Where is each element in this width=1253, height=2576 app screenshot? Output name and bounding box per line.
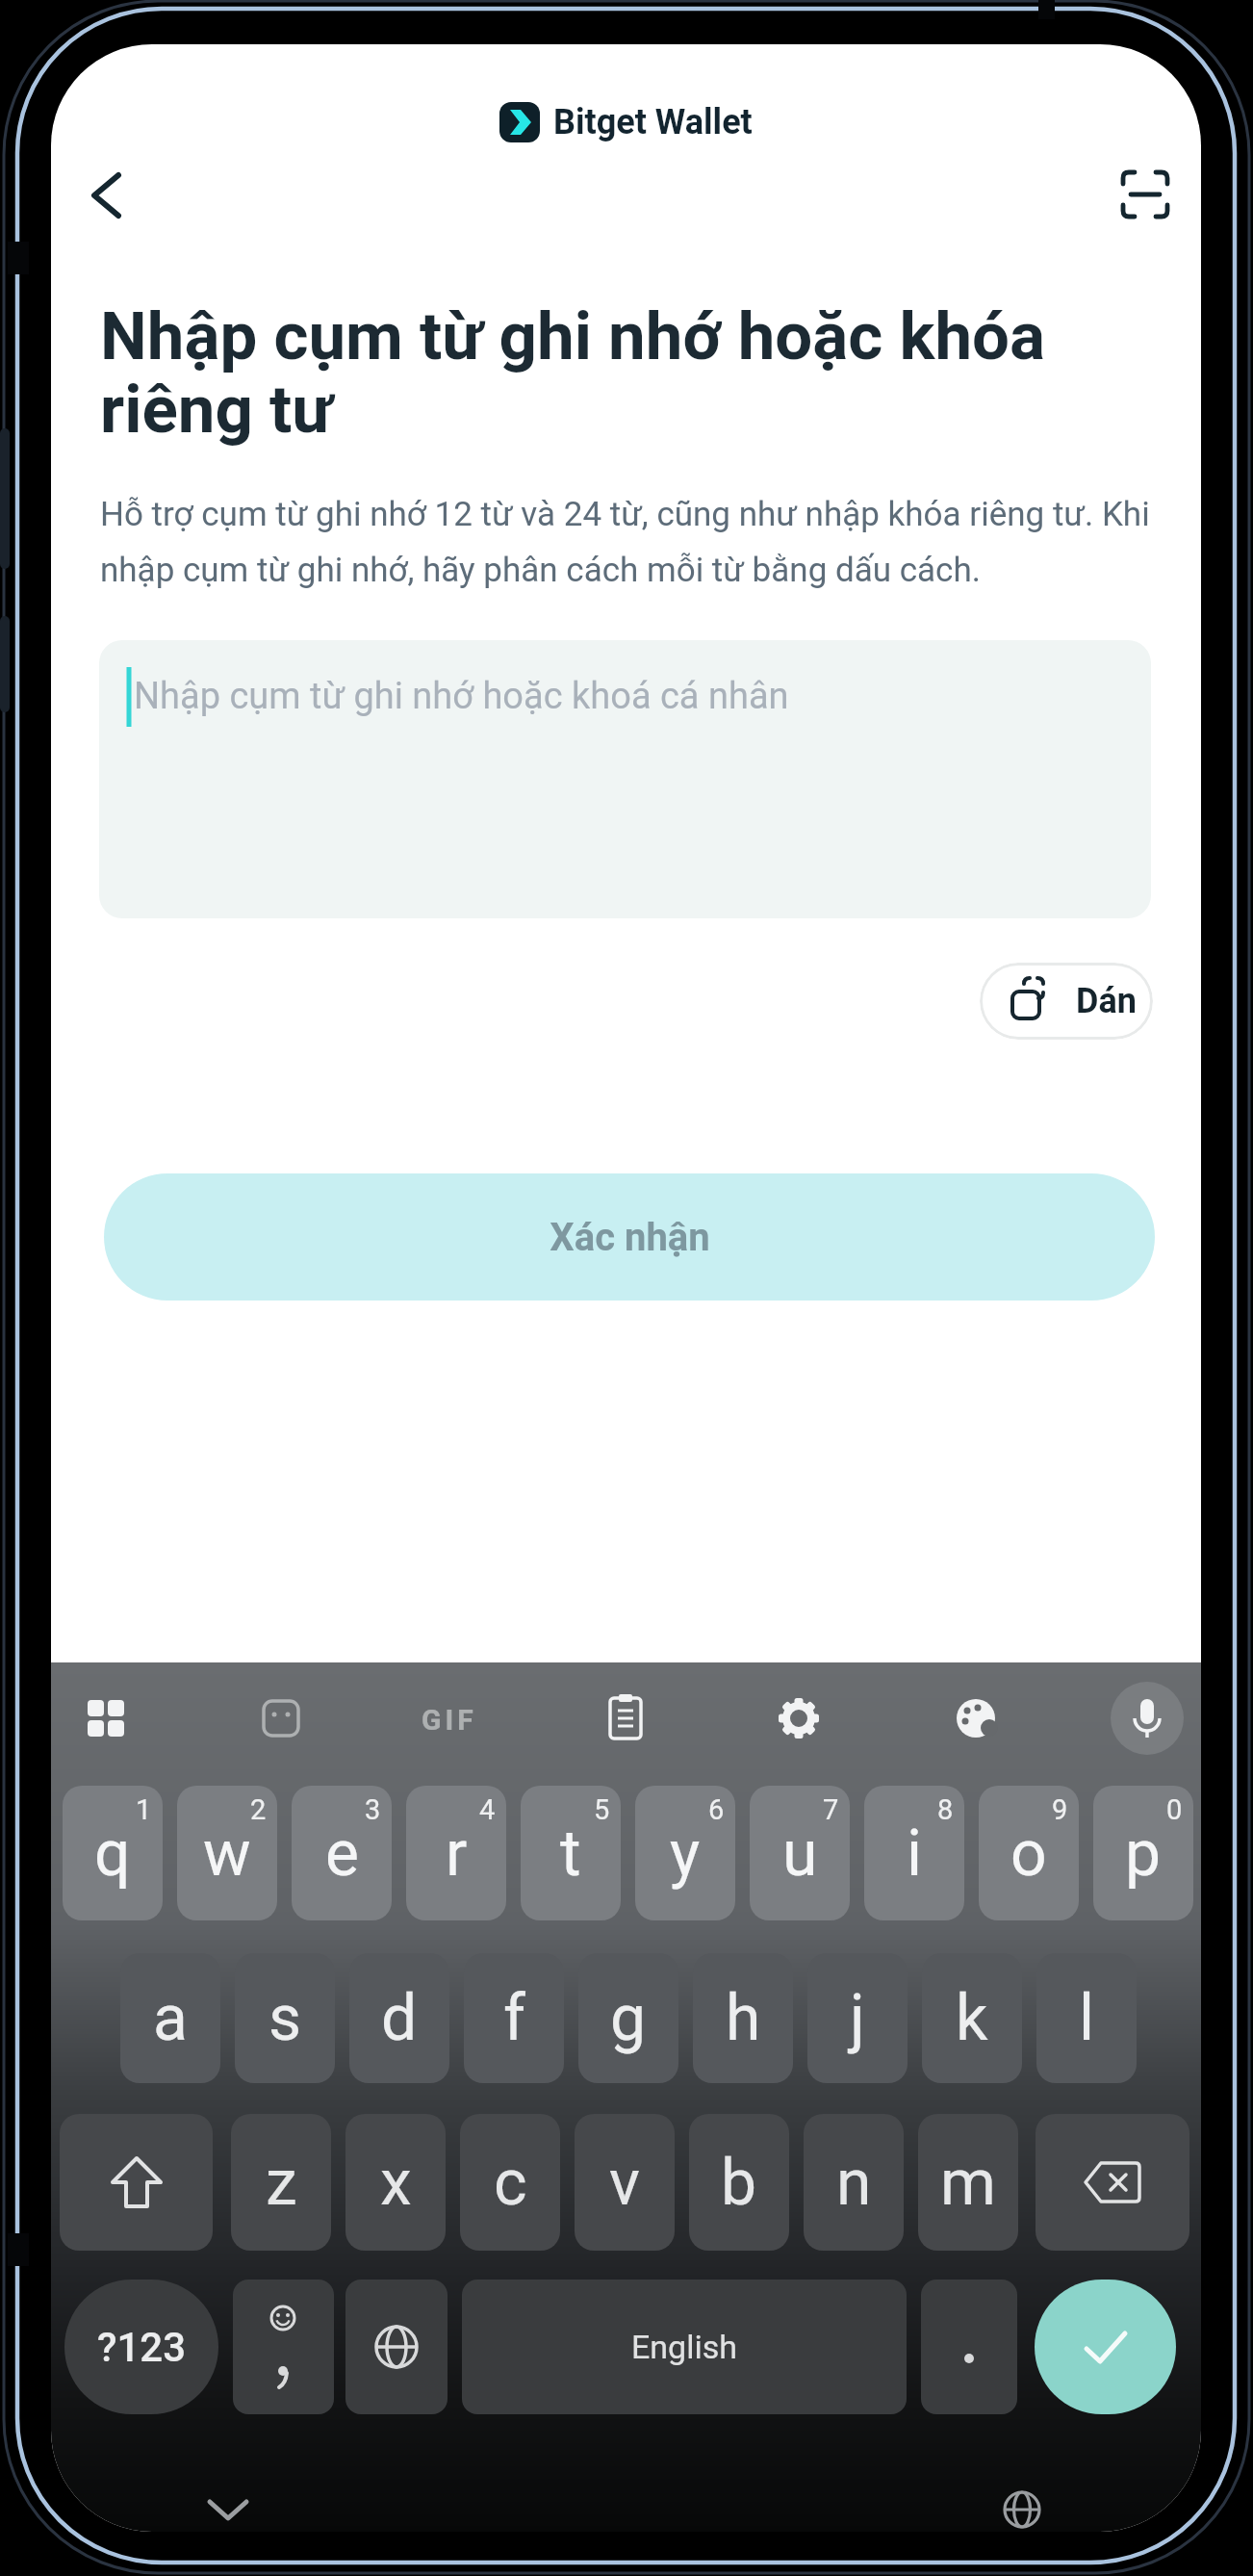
button[interactable]: r [406,1786,506,1920]
button[interactable]: a [120,1953,220,2083]
button[interactable] [984,2471,1061,2532]
staticText: m [940,2146,996,2220]
button[interactable]: n [804,2114,904,2251]
button[interactable]: i [864,1786,964,1920]
button[interactable]: q [63,1786,163,1920]
button[interactable]: p [1093,1786,1193,1920]
staticText: English [631,2328,738,2366]
button[interactable] [411,1680,488,1757]
staticText: g [610,1981,647,2055]
staticText: o [1010,1816,1047,1891]
staticText: 6 [708,1793,725,1826]
button[interactable]: English [462,2280,907,2414]
button[interactable] [243,1680,320,1757]
button[interactable] [190,2471,267,2532]
button[interactable]: x [345,2114,446,2251]
button[interactable]: h [693,1953,793,2083]
button[interactable] [1119,168,1171,220]
staticText: a [153,1981,188,2055]
button[interactable]: w [177,1786,277,1920]
button[interactable]: b [689,2114,789,2251]
staticText: 1 [136,1793,152,1826]
staticText: h [726,1981,761,2055]
button[interactable]: y [635,1786,735,1920]
button[interactable]: o [979,1786,1079,1920]
staticText: Dán [1076,981,1137,1021]
button[interactable] [1109,1680,1186,1757]
staticText: Hỗ trợ cụm từ ghi nhớ 12 từ và 24 từ, cũ… [100,495,1150,534]
button[interactable]: v [575,2114,675,2251]
staticText: f [503,1981,525,2055]
staticText: q [94,1816,131,1891]
staticText: d [381,1981,418,2055]
staticText: 5 [594,1793,610,1826]
button[interactable] [587,1680,664,1757]
button[interactable] [760,1680,837,1757]
staticText: t [560,1816,581,1891]
staticText: 9 [1052,1793,1068,1826]
staticText: z [266,2146,297,2220]
button[interactable]: l [1036,1953,1137,2083]
staticText: Bitget Wallet [553,102,753,142]
staticText: l [1079,1981,1095,2055]
button[interactable]: s [235,1953,335,2083]
button[interactable]: k [922,1953,1022,2083]
staticText: u [782,1816,818,1891]
button[interactable]: m [918,2114,1018,2251]
staticText: y [670,1816,701,1891]
staticText: e [325,1816,359,1891]
staticText: p [1125,1816,1162,1891]
button[interactable]: Xác nhận [104,1173,1155,1301]
staticText: 3 [365,1793,381,1826]
staticText: Nhập cụm từ ghi nhớ hoặc khóa [100,297,1046,375]
staticText: 4 [479,1793,496,1826]
staticText: 8 [937,1793,954,1826]
button[interactable]: t [521,1786,621,1920]
button[interactable] [345,2280,447,2414]
staticText: w [203,1816,251,1891]
staticText: j [850,1981,865,2055]
button[interactable]: Dán [980,963,1153,1040]
button[interactable]: Nhập cụm từ ghi nhớ hoặc khoá cá nhân [99,640,1151,918]
button[interactable] [1036,2114,1189,2251]
staticText: GIF [422,1703,477,1737]
staticText: r [446,1816,468,1891]
button[interactable] [937,1680,1014,1757]
staticText: k [956,1981,988,2055]
button[interactable]: f [464,1953,564,2083]
staticText: nhập cụm từ ghi nhớ, hãy phân cách mỗi t… [100,551,981,590]
staticText: ?123 [97,2324,187,2371]
staticText: n [836,2146,872,2220]
staticText: 0 [1166,1793,1183,1826]
button[interactable]: g [578,1953,678,2083]
staticText: i [907,1816,923,1891]
button[interactable]: z [231,2114,331,2251]
button[interactable] [1035,2280,1176,2414]
button[interactable]: d [349,1953,449,2083]
staticText: b [721,2146,757,2220]
button[interactable] [67,1680,144,1757]
button[interactable]: j [807,1953,908,2083]
staticText: 2 [250,1793,267,1826]
staticText: riêng tư [100,371,333,449]
staticText: x [380,2146,412,2220]
staticText: 7 [823,1793,839,1826]
staticText: c [494,2146,527,2220]
button[interactable]: u [750,1786,850,1920]
staticText: Xác nhận [550,1215,710,1260]
staticText: Nhập cụm từ ghi nhớ hoặc khoá cá nhân [134,675,789,718]
button[interactable]: c [460,2114,560,2251]
button[interactable]: ?123 [64,2280,218,2414]
button[interactable]: e [292,1786,392,1920]
button[interactable] [60,2114,213,2251]
button[interactable] [921,2280,1017,2414]
staticText: v [609,2146,640,2220]
button[interactable] [233,2280,334,2414]
staticText: s [268,1981,302,2055]
button[interactable] [80,167,134,221]
